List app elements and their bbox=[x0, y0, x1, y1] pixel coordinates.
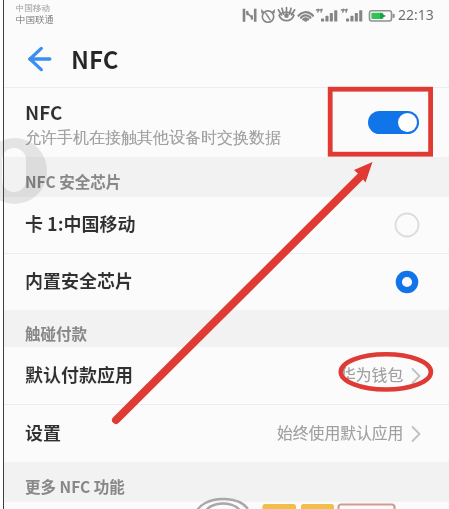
staticText: 触碰付款 bbox=[25, 322, 88, 344]
staticText: 华为钱包 bbox=[340, 363, 404, 386]
staticText: 默认付款应用 bbox=[25, 361, 133, 387]
staticText: 22:13 bbox=[398, 5, 434, 24]
button[interactable]: 默认付款应用 bbox=[4, 347, 449, 404]
staticText: 更多 NFC 功能 bbox=[25, 475, 125, 497]
button[interactable]: 内置安全芯片 bbox=[4, 254, 449, 310]
staticText: NFC bbox=[71, 41, 119, 76]
staticText: 内置安全芯片 bbox=[25, 267, 133, 293]
staticText: 中国联通 bbox=[16, 14, 54, 26]
button[interactable]: NFC bbox=[4, 88, 449, 157]
staticText: NFC bbox=[25, 98, 63, 126]
staticText: 卡 1:中国移动 bbox=[25, 210, 136, 236]
staticText: NFC 安全芯片 bbox=[25, 170, 122, 192]
button[interactable]: Back bbox=[22, 40, 60, 78]
staticText: 始终使用默认应用 bbox=[277, 421, 404, 444]
staticText: 允许手机在接触其他设备时交换数据 bbox=[25, 128, 281, 148]
staticText: 设置 bbox=[25, 419, 61, 445]
button[interactable]: NFC toggle bbox=[368, 111, 419, 134]
button[interactable]: 卡 1:中国移动 bbox=[4, 197, 449, 253]
staticText: 中国移动 bbox=[16, 3, 50, 14]
button[interactable]: 设置 bbox=[4, 405, 449, 462]
